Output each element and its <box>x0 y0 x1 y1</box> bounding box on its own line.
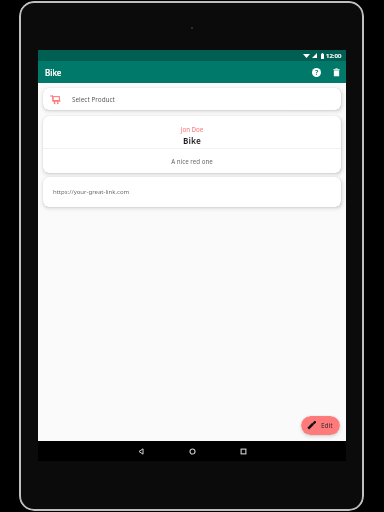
button[interactable]: Select Product <box>43 88 341 110</box>
button[interactable]: https://your-great-link.com <box>43 177 341 207</box>
staticText: https://your-great-link.com <box>53 188 130 196</box>
button[interactable]: Delete <box>326 62 346 82</box>
button[interactable]: Help <box>306 62 326 82</box>
button[interactable]: Back <box>131 441 151 461</box>
button[interactable]: Recents <box>233 441 253 461</box>
staticText: Bike <box>45 67 62 78</box>
button[interactable]: Home <box>182 441 202 461</box>
button[interactable]: Edit <box>301 416 340 435</box>
staticText: Bike <box>43 135 341 146</box>
staticText: A nice red one <box>43 157 341 165</box>
staticText: Jon Doe <box>43 125 341 133</box>
button[interactable]: Jon Doe <box>43 116 341 173</box>
staticText: Edit <box>321 421 333 430</box>
staticText: 12:00 <box>326 52 342 60</box>
staticText: ? <box>315 68 319 77</box>
staticText: Select Product <box>72 95 115 104</box>
